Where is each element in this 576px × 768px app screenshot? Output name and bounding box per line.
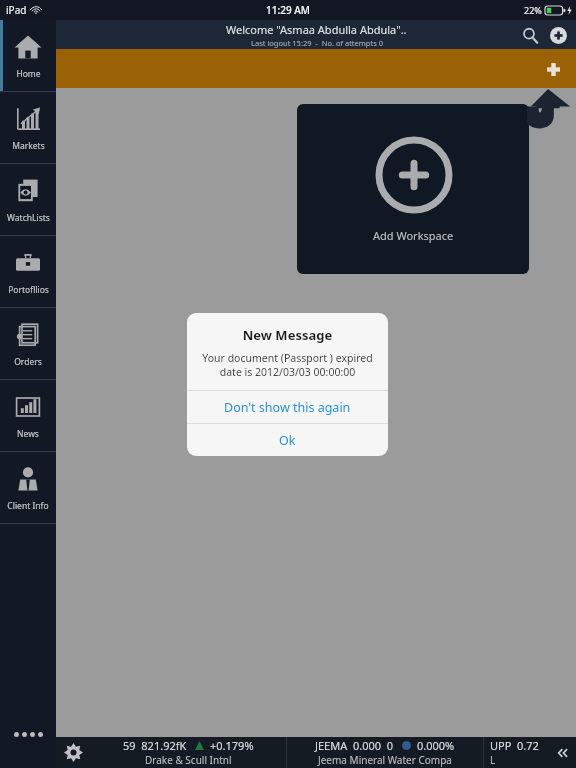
staticText: JEEMA 0.000 0 — [315, 738, 394, 753]
staticText: Home — [16, 68, 41, 80]
staticText: 59 821.92fK — [123, 738, 187, 753]
staticText: Your document (Passport ) expired date i… — [195, 351, 380, 379]
button[interactable]: Add workspace tab — [542, 58, 564, 80]
button[interactable]: Portofllios — [0, 236, 56, 308]
staticText: 0.000% — [417, 738, 455, 753]
staticText: Add Workspace — [373, 228, 454, 243]
staticText: L — [490, 753, 496, 767]
button[interactable]: WatchLists — [0, 164, 56, 236]
button[interactable]: Search — [520, 25, 540, 45]
staticText: Welcome "Asmaa Abdulla Abdula".. — [226, 22, 407, 37]
staticText: Don't show this again — [224, 399, 351, 416]
staticText: Portofllios — [8, 284, 49, 296]
staticText: Markets — [12, 140, 45, 152]
staticText: Ok — [279, 432, 296, 449]
button[interactable]: Add — [548, 25, 568, 45]
button[interactable]: Client Info — [0, 452, 56, 524]
staticText: UPP 0.72 — [490, 738, 539, 753]
staticText: News — [17, 428, 39, 440]
staticText: Last logout 15:29 - No. of attempts 0 — [251, 38, 383, 48]
button[interactable]: 59 821.92fK — [90, 737, 286, 768]
staticText: WatchLists — [7, 212, 50, 224]
button[interactable]: Orders — [0, 308, 56, 380]
button[interactable]: Ok — [187, 424, 388, 456]
staticText: 11:29 AM — [266, 3, 310, 17]
staticText: +0.179% — [210, 738, 254, 753]
staticText: New Message — [187, 326, 388, 344]
staticText: Orders — [14, 356, 42, 368]
button[interactable]: JEEMA 0.000 0 — [287, 737, 483, 768]
staticText: Jeema Mineral Water Compa — [318, 753, 452, 767]
staticText: Client Info — [7, 500, 49, 512]
button[interactable]: Add Workspace — [297, 104, 529, 274]
button[interactable]: Settings — [56, 737, 90, 768]
button[interactable]: More — [0, 732, 56, 754]
button[interactable]: Markets — [0, 92, 56, 164]
staticText: 22% — [524, 4, 542, 16]
button[interactable]: Don't show this again — [187, 391, 388, 423]
staticText: Drake & Scull Intnl — [145, 753, 232, 767]
button[interactable]: Home — [0, 20, 56, 92]
staticText: iPad — [6, 3, 27, 17]
button[interactable]: News — [0, 380, 56, 452]
